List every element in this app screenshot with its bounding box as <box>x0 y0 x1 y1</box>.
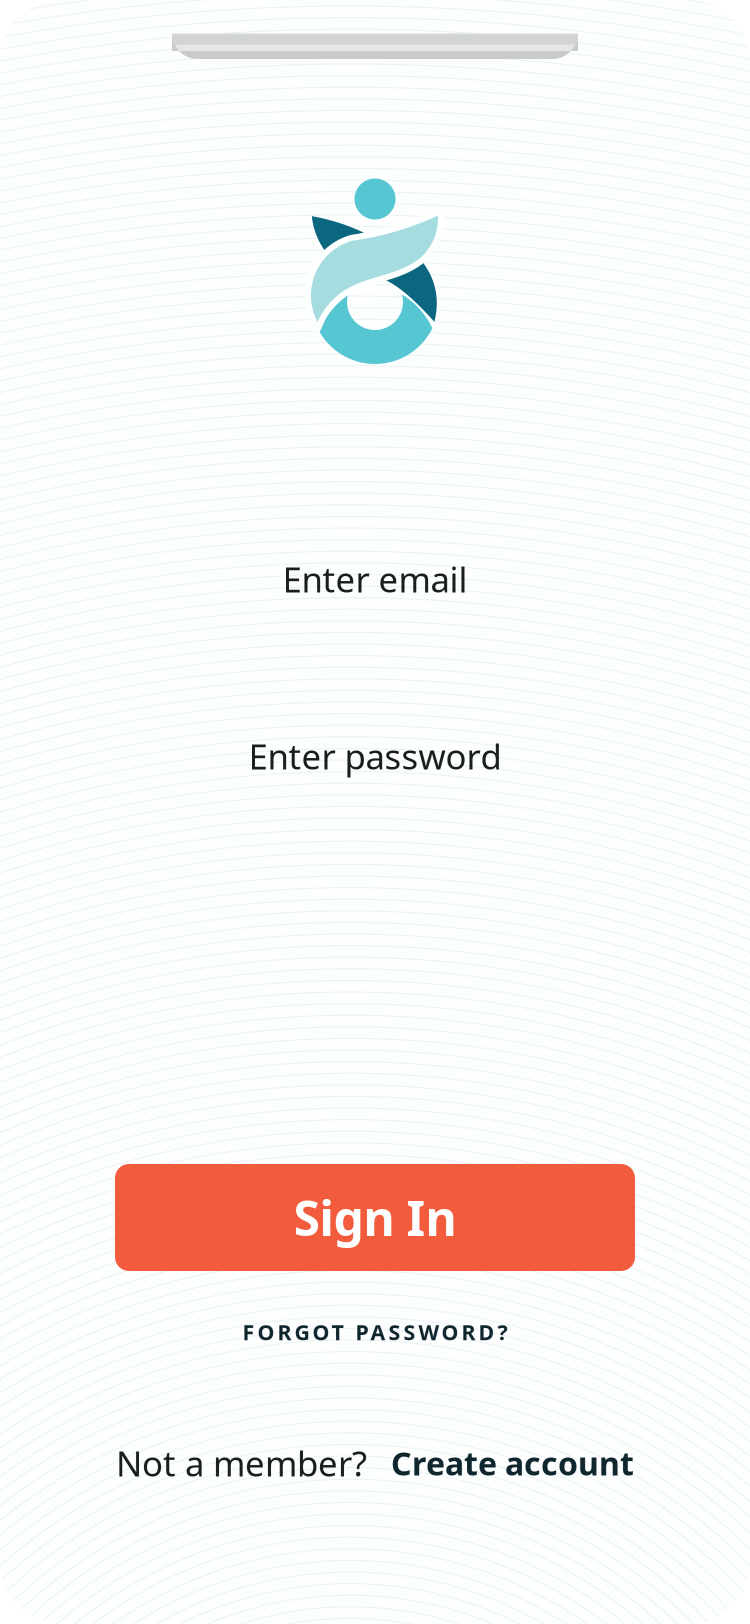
staticText: FORGOT PASSWORD? <box>242 1318 507 1346</box>
staticText: Create account <box>391 1442 634 1484</box>
button[interactable]: Sign In <box>115 1164 635 1271</box>
button[interactable]: Create account <box>391 1442 634 1484</box>
staticText: Sign In <box>293 1186 456 1249</box>
button[interactable]: FORGOT PASSWORD? <box>115 1317 635 1347</box>
staticText: Enter password <box>248 733 501 779</box>
staticText: Enter email <box>282 556 467 602</box>
staticText: Not a member? <box>116 1440 367 1486</box>
